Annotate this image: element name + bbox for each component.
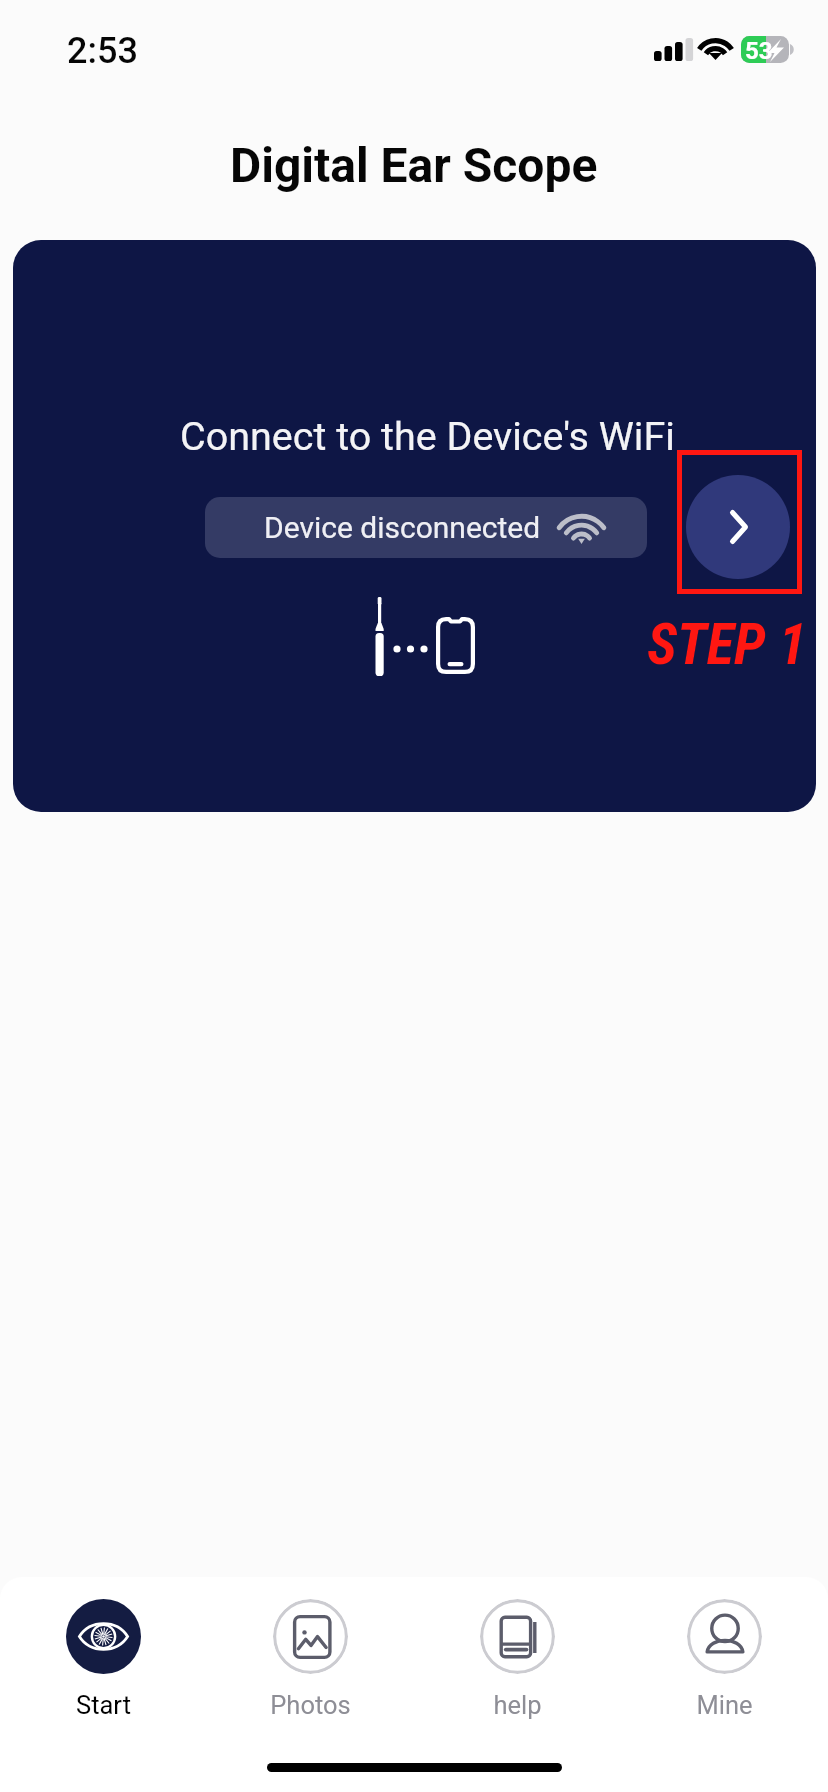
staticText: help bbox=[493, 1690, 542, 1720]
staticText: 2:53 bbox=[67, 30, 138, 72]
staticText: Digital Ear Scope bbox=[230, 137, 598, 193]
button[interactable]: Device disconnected bbox=[205, 497, 647, 558]
staticText: Device disconnected bbox=[264, 510, 541, 545]
staticText: Connect to the Device's WiFi bbox=[180, 413, 675, 459]
button[interactable]: Next step bbox=[686, 475, 790, 579]
staticText: Mine bbox=[696, 1690, 753, 1720]
staticText: Start bbox=[76, 1690, 131, 1720]
button[interactable]: Start bbox=[0, 1599, 207, 1720]
button[interactable]: Photos bbox=[207, 1599, 414, 1720]
button[interactable]: help bbox=[414, 1599, 621, 1720]
staticText: Photos bbox=[270, 1690, 351, 1720]
staticText: 53 bbox=[745, 37, 773, 65]
staticText: STEP 1 bbox=[647, 611, 807, 678]
button[interactable]: Mine bbox=[621, 1599, 828, 1720]
